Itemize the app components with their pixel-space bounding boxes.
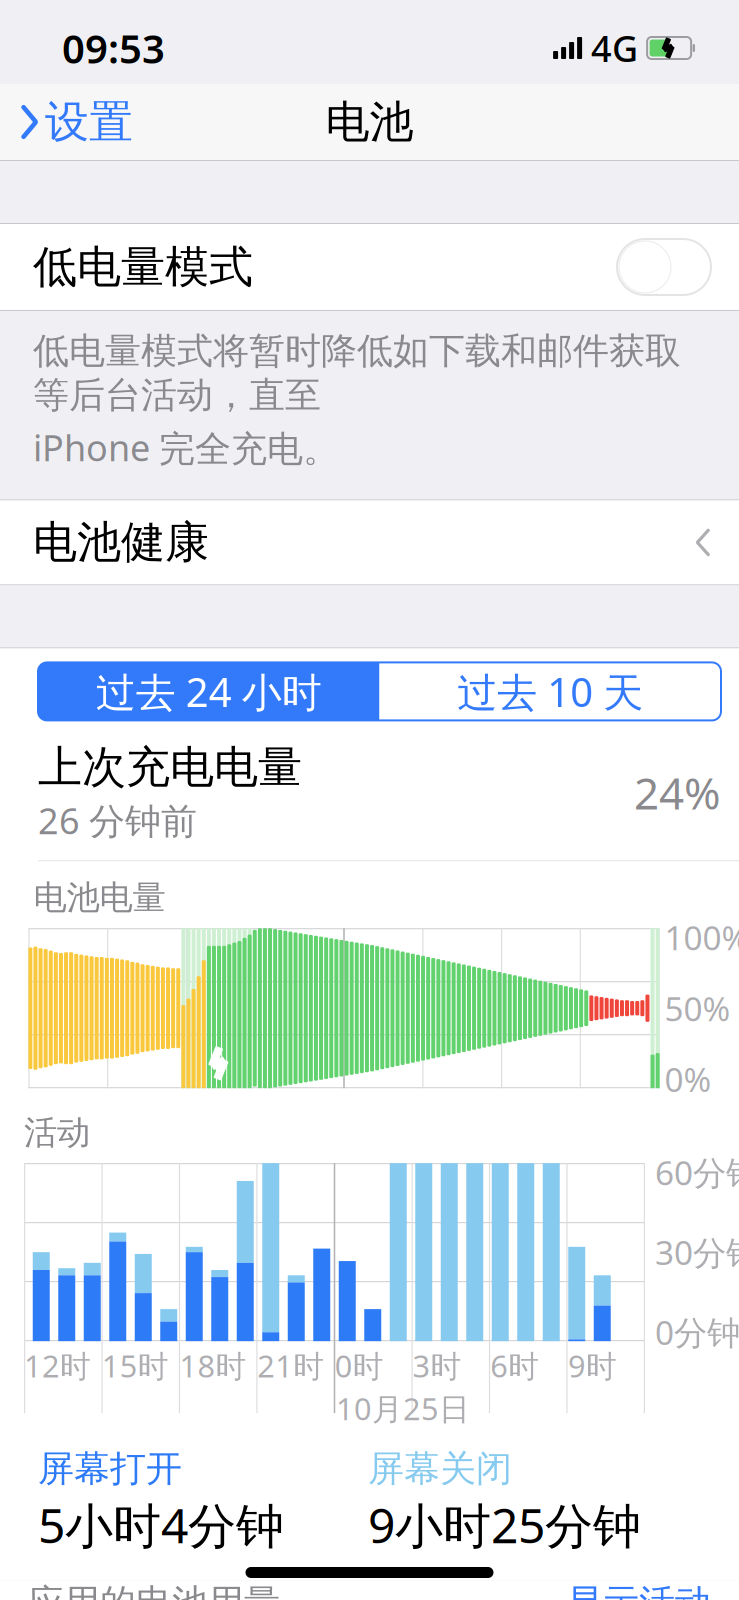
staticText: 应用的电池用量	[28, 1581, 280, 1600]
button[interactable]: 过去 10 天	[379, 662, 721, 720]
staticText: 0时	[335, 1345, 384, 1386]
staticText: 电池	[325, 95, 413, 149]
staticText: 屏幕打开	[38, 1447, 182, 1491]
staticText: 0%	[664, 1057, 711, 1101]
staticText: 电池电量	[33, 877, 165, 918]
staticText: 3时	[413, 1345, 462, 1386]
staticText: 0分钟	[655, 1310, 739, 1354]
staticText: 过去 10 天	[457, 665, 643, 718]
staticText: 低电量模式将暂时降低如下载和邮件获取等后台活动，直至	[33, 329, 681, 417]
button[interactable]: 设置	[0, 87, 133, 157]
button[interactable]: 显示活动	[567, 1581, 711, 1600]
staticText: iPhone 完全充电。	[33, 423, 339, 471]
staticText: 24%	[634, 763, 721, 821]
staticText: 30分钟	[655, 1230, 739, 1274]
staticText: 设置	[45, 95, 133, 149]
staticText: 电池健康	[33, 515, 209, 569]
staticText: 60分钟	[655, 1150, 739, 1194]
button[interactable]: 电池健康	[0, 500, 739, 584]
button[interactable]: 低电量模式	[0, 224, 739, 310]
staticText: 10月25日	[336, 1388, 470, 1429]
staticText: 4G	[591, 24, 638, 72]
button[interactable]: 过去 24 小时	[38, 662, 379, 720]
staticText: 低电量模式	[33, 240, 253, 294]
staticText: 21时	[257, 1345, 324, 1386]
staticText: 显示活动	[567, 1581, 711, 1600]
staticText: 9小时25分钟	[368, 1493, 641, 1556]
staticText: 18时	[179, 1345, 246, 1386]
staticText: 过去 24 小时	[96, 665, 322, 718]
staticText: 6时	[490, 1345, 539, 1386]
staticText: 100%	[664, 915, 739, 959]
staticText: 09:53	[62, 21, 165, 74]
staticText: 5小时4分钟	[38, 1493, 284, 1556]
staticText: 9时	[568, 1345, 617, 1386]
staticText: 上次充电电量	[38, 740, 302, 794]
staticText: 26 分钟前	[38, 796, 197, 844]
staticText: 15时	[102, 1345, 169, 1386]
staticText: 50%	[664, 986, 730, 1030]
staticText: 屏幕关闭	[368, 1447, 512, 1491]
staticText: 活动	[24, 1112, 90, 1153]
staticText: 12时	[24, 1345, 91, 1386]
